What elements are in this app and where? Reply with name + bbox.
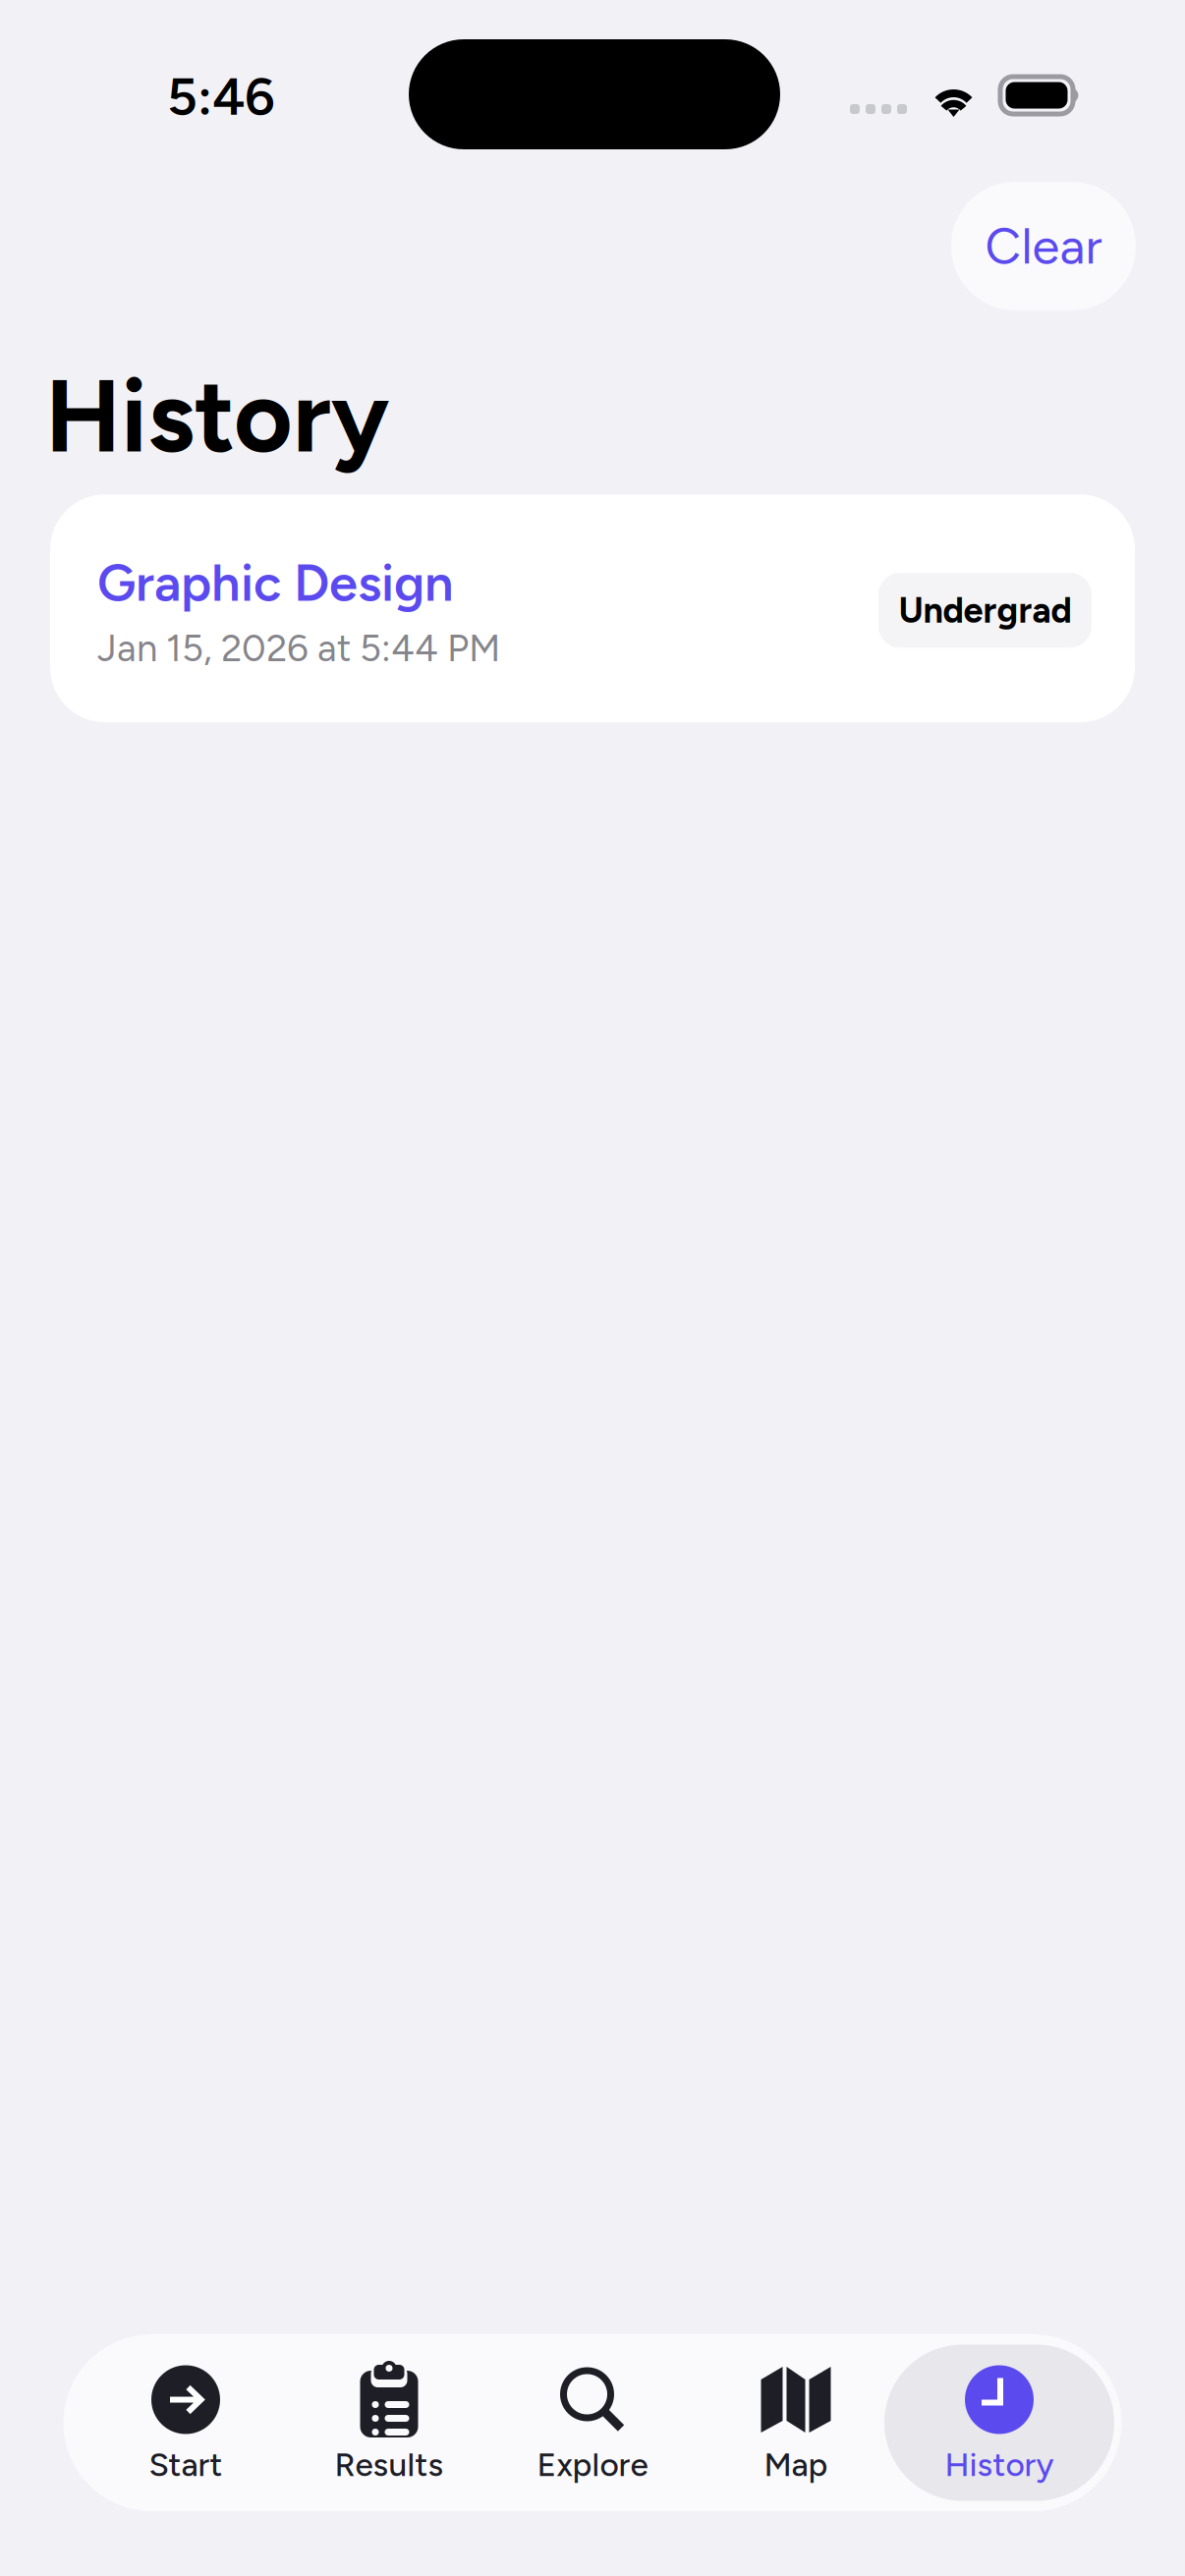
- button[interactable]: Results: [287, 2334, 491, 2511]
- staticText: Graphic Design: [97, 552, 453, 614]
- staticText: Results: [335, 2445, 444, 2484]
- staticText: Start: [149, 2445, 223, 2484]
- staticText: Map: [764, 2445, 828, 2484]
- button[interactable]: Start: [84, 2334, 287, 2511]
- staticText: History: [45, 356, 389, 477]
- staticText: Undergrad: [899, 589, 1072, 632]
- staticText: Clear: [985, 216, 1102, 276]
- staticText: 5:46: [167, 65, 275, 128]
- staticText: Jan 15, 2026 at 5:44 PM: [97, 625, 500, 671]
- staticText: History: [945, 2445, 1054, 2484]
- button[interactable]: History: [898, 2334, 1101, 2511]
- button[interactable]: Explore: [491, 2334, 694, 2511]
- button[interactable]: Map: [694, 2334, 898, 2511]
- staticText: Explore: [537, 2445, 648, 2484]
- button[interactable]: Clear: [951, 182, 1136, 310]
- button[interactable]: Graphic Design: [50, 494, 1135, 722]
